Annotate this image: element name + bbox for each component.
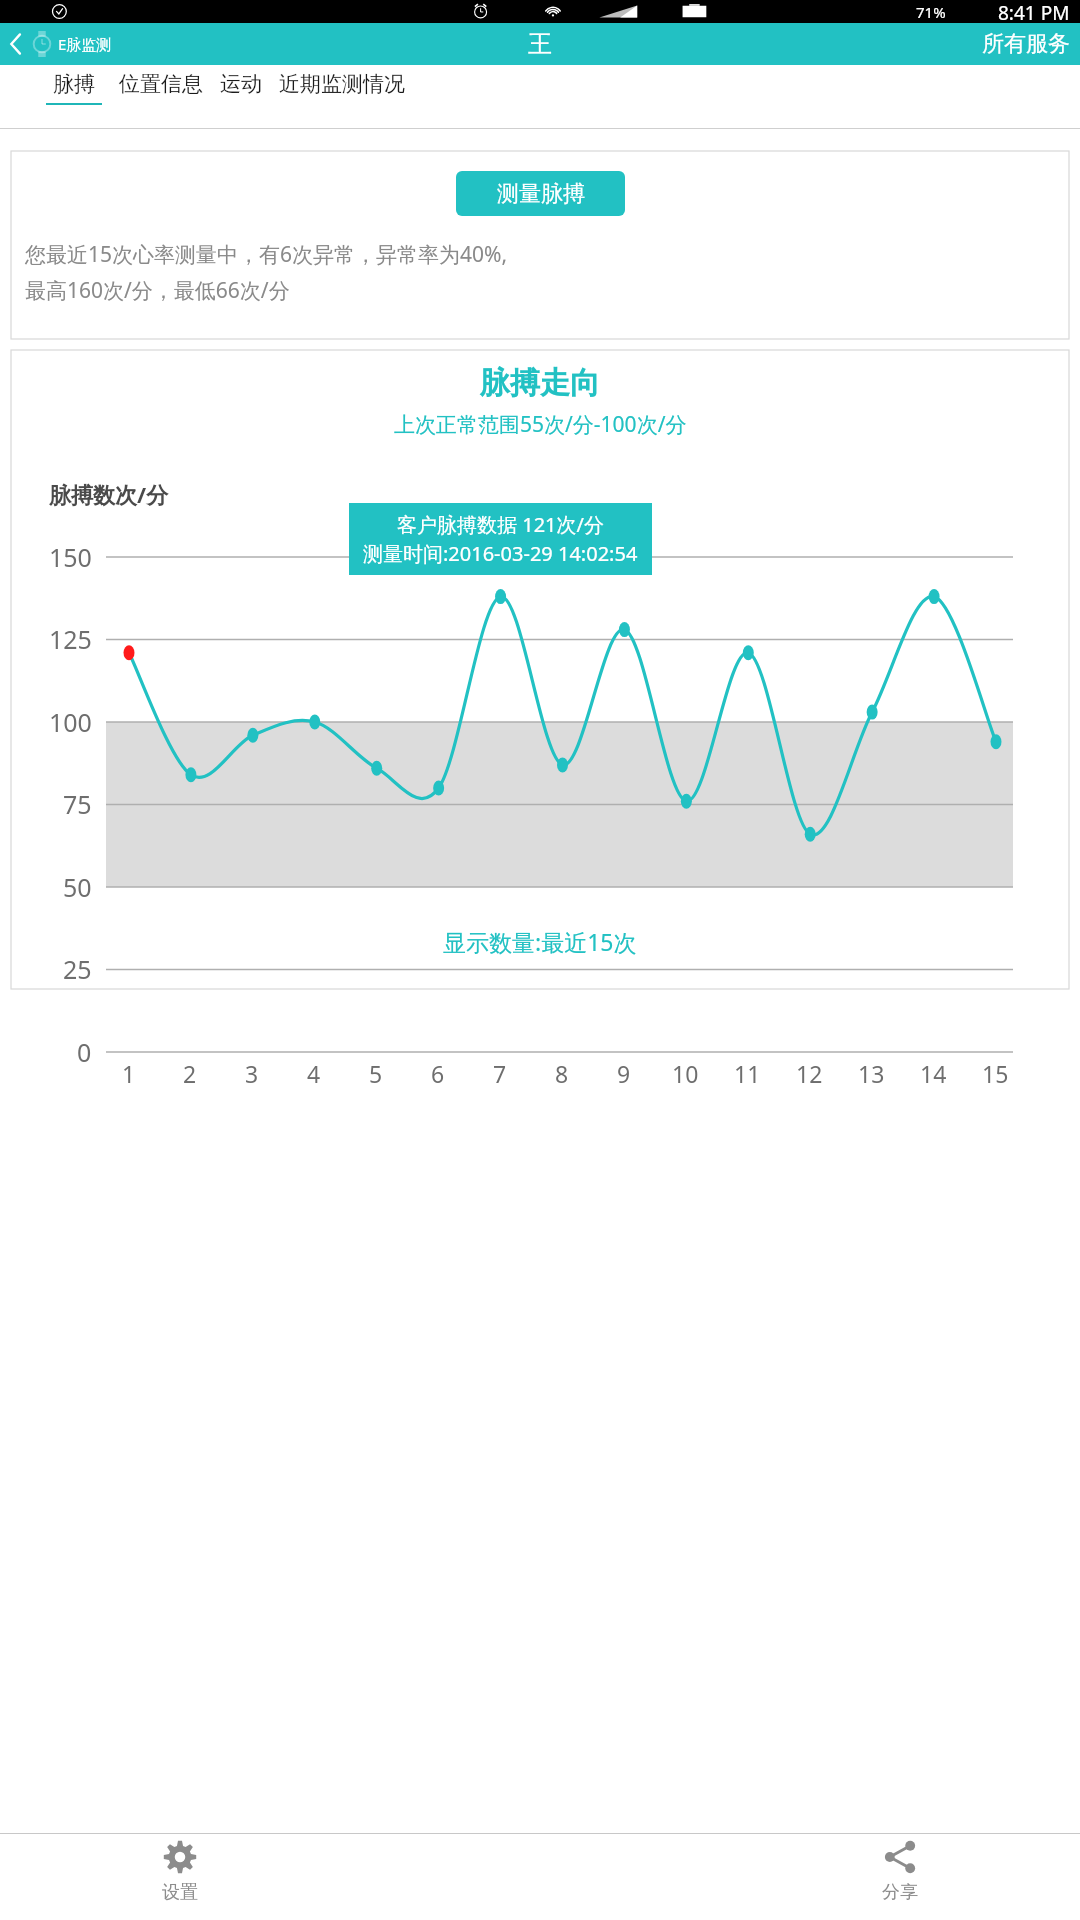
staticText: 50 <box>63 870 92 904</box>
staticText: 11 <box>734 1058 761 1089</box>
staticText: 位置信息 <box>119 71 203 97</box>
staticText: 14 <box>920 1058 947 1089</box>
staticText: 9 <box>617 1058 631 1089</box>
staticText: 所有服务 <box>982 30 1070 58</box>
staticText: 测量时间:2016-03-29 14:02:54 <box>363 540 638 567</box>
staticText: 0 <box>77 1035 92 1069</box>
staticText: 3 <box>245 1058 259 1089</box>
staticText: 5 <box>369 1058 383 1089</box>
staticText: 显示数量:最近15次 <box>443 926 637 957</box>
staticText: 测量脉搏 <box>497 180 585 208</box>
staticText: 设置 <box>162 1881 198 1904</box>
button[interactable]: 所有服务 <box>972 24 1080 64</box>
staticText: 10 <box>672 1058 699 1089</box>
button[interactable]: 显示数量:最近15次 <box>437 920 643 963</box>
staticText: 100 <box>49 705 92 739</box>
staticText: E脉监测 <box>58 34 112 54</box>
button[interactable]: Settings <box>0 1834 360 1920</box>
button[interactable]: 脉搏 <box>46 65 102 111</box>
staticText: 最高160次/分，最低66次/分 <box>25 276 290 305</box>
button[interactable]: 近期监测情况 <box>279 65 405 111</box>
staticText: 脉搏数次/分 <box>49 479 169 509</box>
button[interactable]: 客户脉搏数据 121次/分 <box>349 503 652 575</box>
staticText: 7 <box>493 1058 507 1089</box>
staticText: 15 <box>982 1058 1009 1089</box>
staticText: 8 <box>555 1058 569 1089</box>
staticText: 1 <box>122 1058 136 1089</box>
staticText: 脉搏走向 <box>480 364 600 402</box>
button[interactable]: Share <box>720 1834 1080 1920</box>
staticText: 12 <box>796 1058 823 1089</box>
staticText: 13 <box>858 1058 885 1089</box>
button[interactable]: 位置信息 <box>119 65 203 111</box>
staticText: 8:41 PM <box>998 0 1070 23</box>
staticText: 4 <box>307 1058 321 1089</box>
staticText: 125 <box>49 622 92 656</box>
staticText: 上次正常范围55次/分-100次/分 <box>394 410 687 439</box>
button[interactable]: 运动 <box>220 65 262 111</box>
staticText: 王 <box>528 29 552 59</box>
staticText: 客户脉搏数据 121次/分 <box>397 511 604 538</box>
button[interactable]: Back to E脉监测 <box>0 31 118 57</box>
staticText: 近期监测情况 <box>279 71 405 97</box>
staticText: 分享 <box>882 1881 918 1904</box>
button[interactable]: 测量脉搏 <box>456 171 625 216</box>
staticText: 25 <box>63 952 92 986</box>
staticText: 71% <box>916 2 946 22</box>
staticText: 您最近15次心率测量中，有6次异常，异常率为40%, <box>25 240 508 269</box>
staticText: 2 <box>183 1058 197 1089</box>
staticText: 150 <box>49 540 92 574</box>
staticText: 运动 <box>220 71 262 97</box>
staticText: 脉搏 <box>53 71 95 97</box>
staticText: 6 <box>431 1058 445 1089</box>
staticText: 75 <box>63 787 92 821</box>
